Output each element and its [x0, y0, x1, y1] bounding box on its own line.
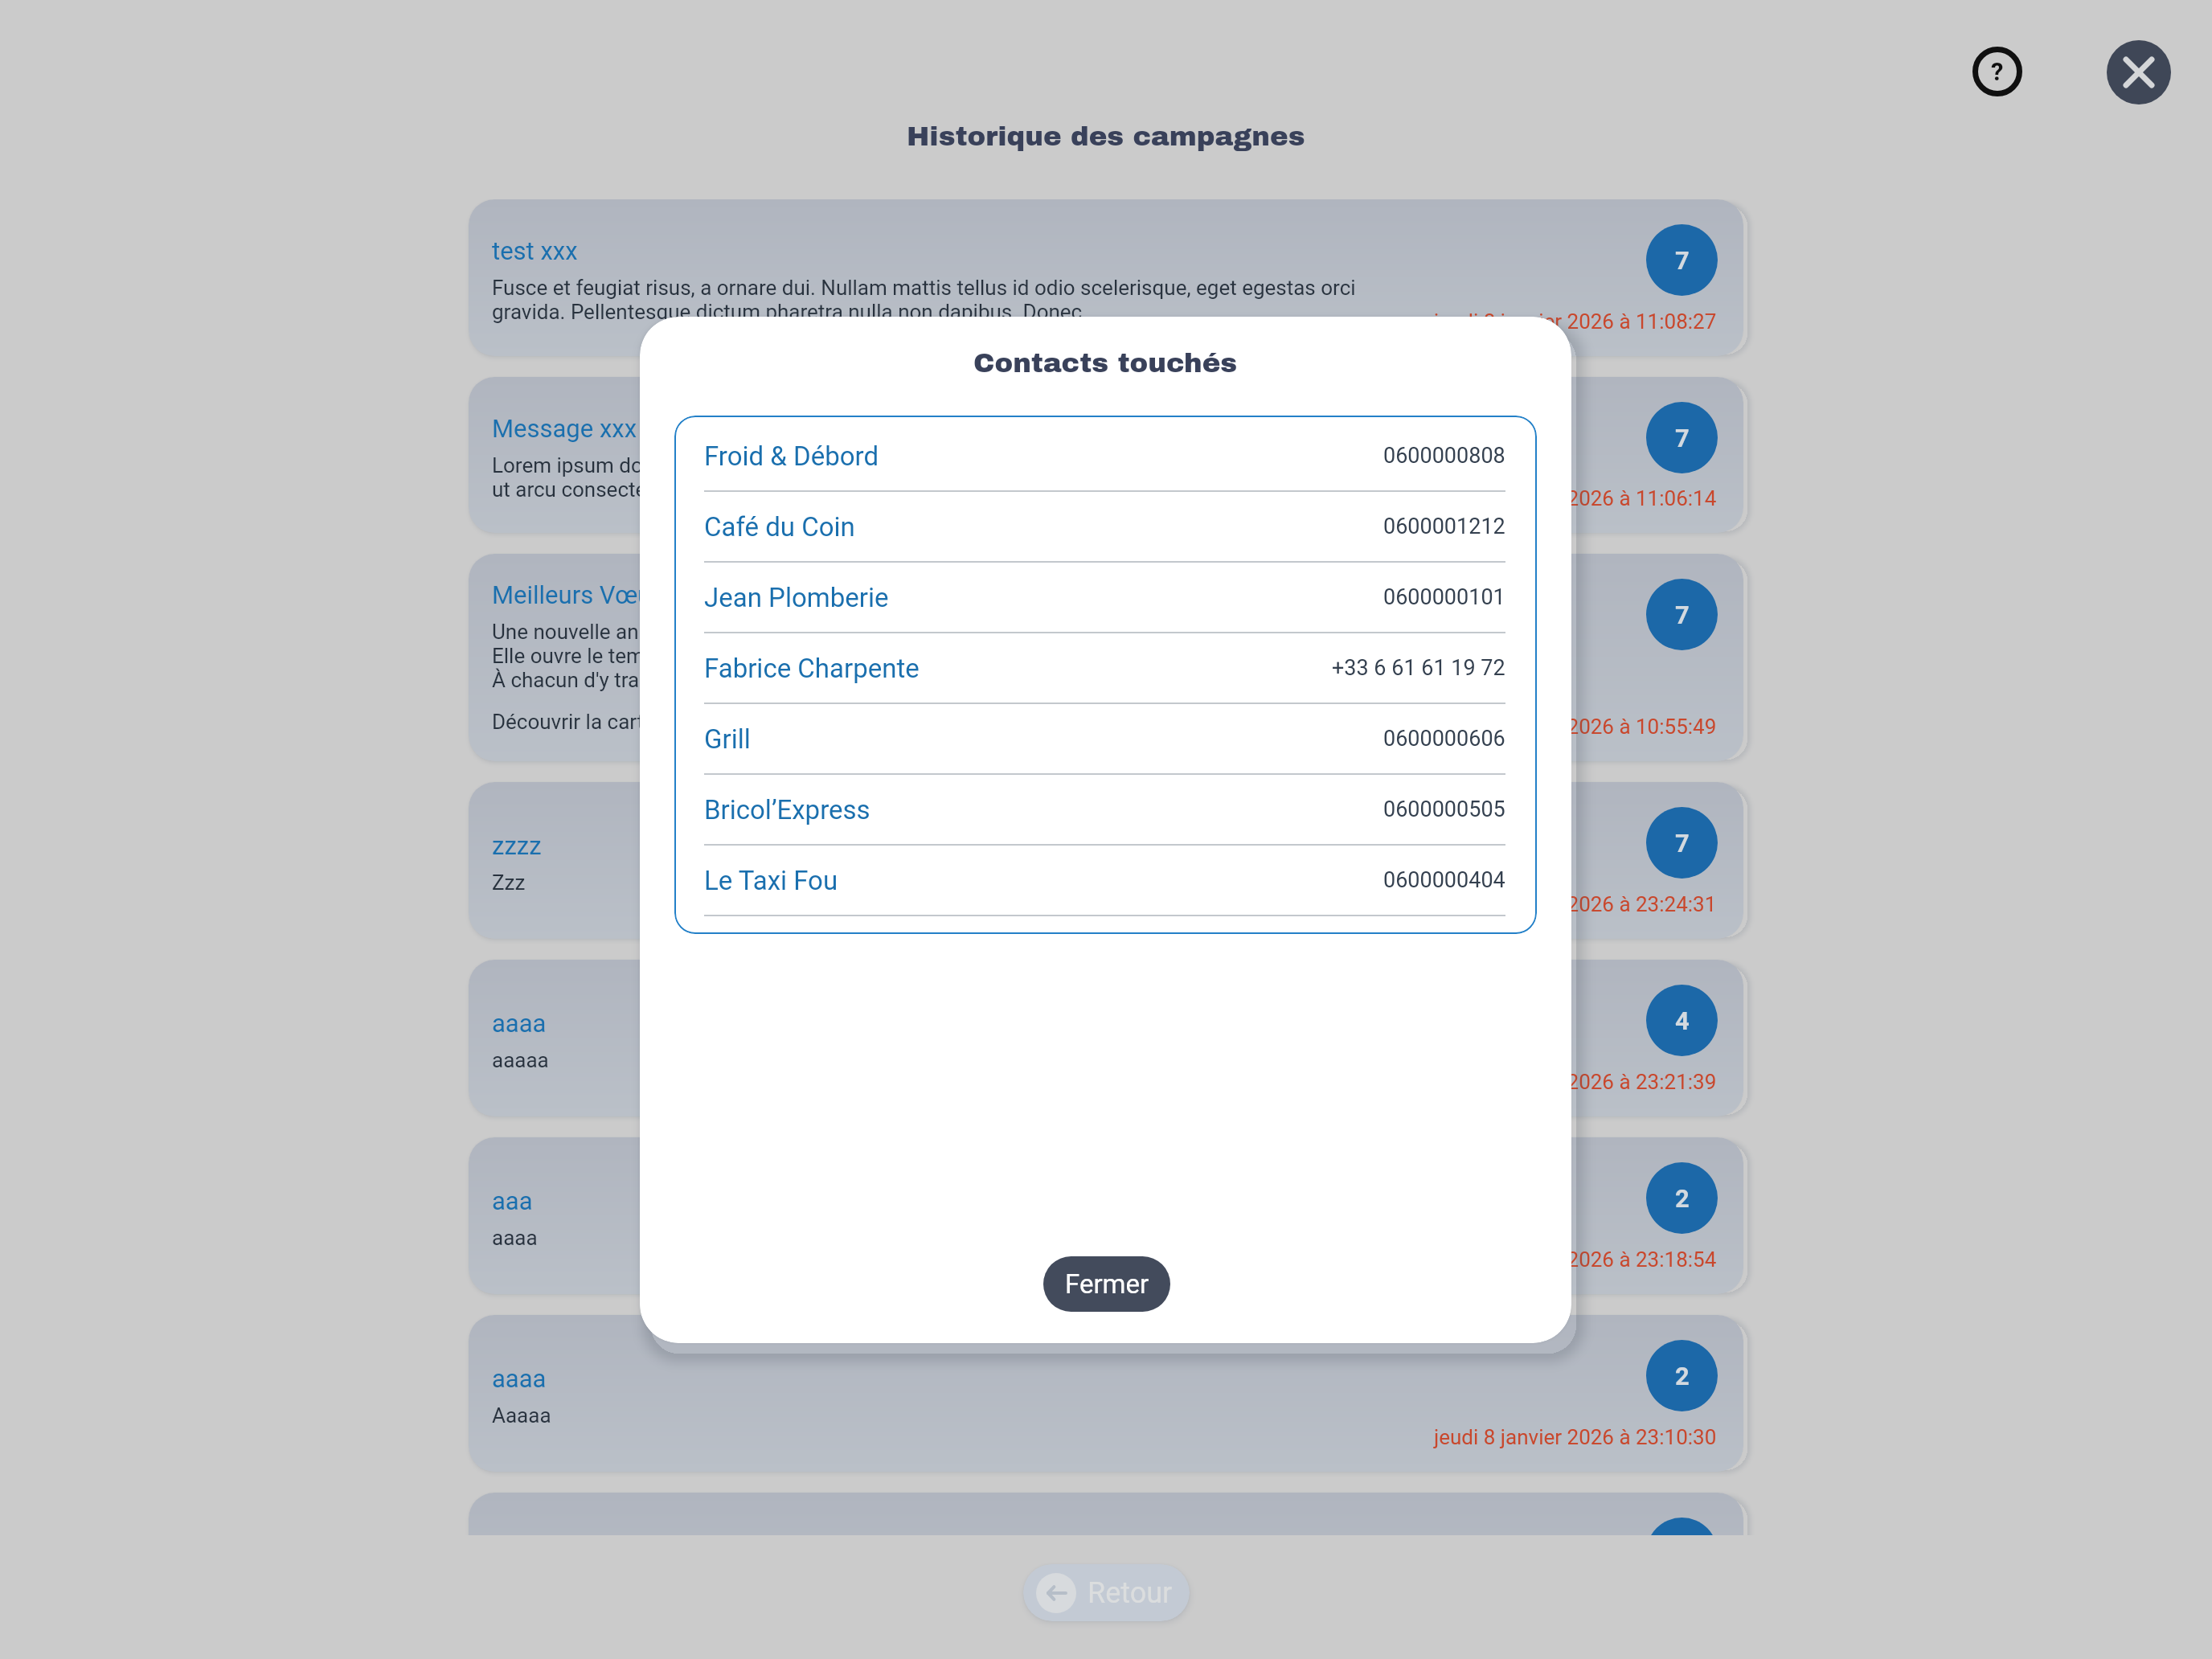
staticText: Le Taxi Fou	[704, 865, 838, 896]
button[interactable]: Jean Plomberie	[704, 563, 1505, 632]
button[interactable]: Meilleurs Vœux	[469, 554, 1743, 761]
button[interactable]: Le Taxi Fou	[704, 846, 1505, 915]
staticText: ?	[1991, 57, 2004, 86]
staticText: Découvrir la carte	[492, 710, 656, 734]
staticText: 0600000101	[1383, 584, 1505, 610]
button[interactable]: bbbb	[469, 1493, 1743, 1535]
staticText: Historique des campagnes	[907, 121, 1305, 151]
staticText: 2	[1675, 1362, 1690, 1391]
staticText: +33 6 61 61 19 72	[1332, 655, 1505, 681]
staticText: aaa	[492, 1186, 533, 1215]
button[interactable]: test xxx	[469, 199, 1743, 356]
staticText: gravida. Pellentesque dictum pharetra nu…	[492, 300, 1083, 324]
button[interactable]: aaaa	[469, 1315, 1743, 1472]
staticText: 4	[1675, 1006, 1690, 1035]
staticText: Contacts touchés	[973, 348, 1238, 378]
staticText: Café du Coin	[704, 511, 855, 543]
staticText: Jean Plomberie	[704, 582, 889, 613]
staticText: 0600000808	[1383, 443, 1505, 469]
staticText: jeudi 8 janvier 2026 à 23:21:39	[1434, 1070, 1717, 1094]
staticText: 7	[1675, 424, 1690, 453]
button[interactable]: Retour	[1023, 1564, 1190, 1621]
button[interactable]: Grill	[704, 704, 1505, 773]
staticText: Zzz	[492, 870, 526, 895]
button[interactable]: Message xxx	[469, 377, 1743, 533]
staticText: À chacun d'y tracer sa route.	[492, 668, 755, 692]
button[interactable]: Fermer	[2107, 40, 2171, 104]
staticText: 7	[1675, 829, 1690, 858]
staticText: Elle ouvre le temps des possibles.	[492, 644, 806, 668]
staticText: aaaa	[492, 1364, 547, 1393]
button[interactable]: Fabrice Charpente	[704, 633, 1505, 703]
staticText: jeudi 8 janvier 2026 à 23:18:54	[1434, 1247, 1717, 1272]
button[interactable]: zzzz	[469, 782, 1743, 939]
staticText: Fusce et feugiat risus, a ornare dui. Nu…	[492, 276, 1356, 300]
staticText: Bricol’Express	[704, 794, 870, 825]
button[interactable]: Froid & Débord	[704, 421, 1505, 490]
staticText: Grill	[704, 723, 751, 755]
staticText: jeudi 8 janvier 2026 à 11:06:14	[1434, 486, 1717, 510]
staticText: Une nouvelle année commence.	[492, 620, 788, 644]
staticText: aaaa	[492, 1009, 547, 1038]
staticText: 0600001212	[1383, 514, 1505, 539]
staticText: test xxx	[492, 236, 578, 265]
button[interactable]: aaaa	[469, 960, 1743, 1116]
staticText: 0600000606	[1383, 726, 1505, 752]
staticText: jeudi 8 janvier 2026 à 11:08:27	[1434, 309, 1717, 334]
button[interactable]: aaa	[469, 1137, 1743, 1294]
staticText: 2	[1675, 1184, 1690, 1213]
button[interactable]: Bricol’Express	[704, 775, 1505, 844]
staticText: 7	[1675, 600, 1690, 629]
staticText: Fermer	[1065, 1268, 1149, 1300]
staticText: zzzz	[492, 831, 542, 860]
button[interactable]: Café du Coin	[704, 492, 1505, 561]
staticText: Aaaaa	[492, 1403, 551, 1428]
staticText: ut arcu consectetur	[492, 477, 672, 502]
staticText: jeudi 8 janvier 2026 à 23:10:30	[1434, 1425, 1717, 1449]
button[interactable]: Fermer	[1043, 1256, 1170, 1312]
staticText: 7	[1675, 246, 1690, 275]
staticText: Lorem ipsum dolor sit amet, consectetur …	[492, 453, 1172, 477]
staticText: aaaaa	[492, 1048, 549, 1072]
staticText: Fabrice Charpente	[704, 653, 920, 684]
staticText: jeudi 8 janvier 2026 à 23:24:31	[1434, 892, 1717, 916]
staticText: 0600000505	[1383, 797, 1505, 822]
staticText: Meilleurs Vœux	[492, 580, 664, 609]
staticText: aaaa	[492, 1226, 538, 1250]
staticText: Message xxx	[492, 414, 637, 443]
staticText: Froid & Débord	[704, 440, 879, 472]
button[interactable]: Aide	[1967, 41, 2028, 102]
staticText: jeudi 8 janvier 2026 à 10:55:49	[1434, 715, 1717, 739]
staticText: Retour	[1088, 1576, 1173, 1610]
staticText: 0600000404	[1383, 867, 1505, 893]
